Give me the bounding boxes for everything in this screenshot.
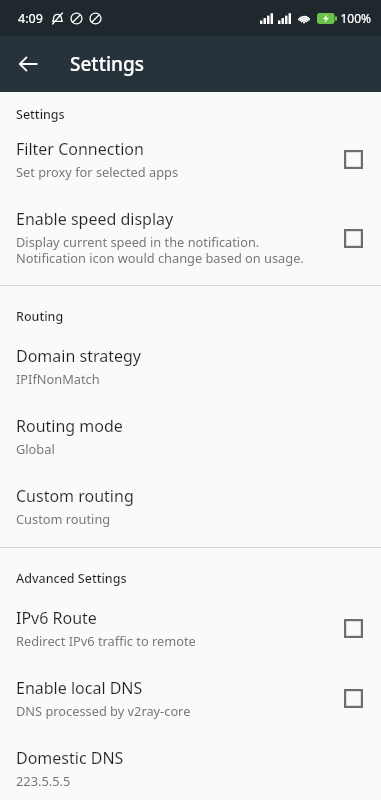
button[interactable]: Domestic DNS — [0, 733, 381, 800]
staticText: Routing — [16, 308, 64, 325]
staticText: Set proxy for selected apps — [16, 163, 179, 180]
button[interactable]: Toggle Filter Connection — [341, 147, 365, 171]
button[interactable]: Toggle Enable local DNS — [341, 686, 365, 710]
button[interactable]: Toggle IPv6 Route — [341, 616, 365, 640]
staticText: Global — [16, 440, 55, 457]
button[interactable]: Custom routing — [0, 471, 381, 547]
staticText: DNS processed by v2ray-core — [16, 702, 191, 719]
staticText: Domestic DNS — [16, 747, 124, 769]
staticText: Enable local DNS — [16, 677, 143, 699]
staticText: Settings — [16, 106, 65, 123]
button[interactable]: Filter Connection — [0, 123, 381, 194]
button[interactable]: Routing mode — [0, 401, 381, 471]
staticText: Filter Connection — [16, 138, 144, 160]
button[interactable]: Enable speed display — [0, 194, 381, 285]
staticText: Custom routing — [16, 485, 134, 507]
button[interactable]: Enable local DNS — [0, 663, 381, 733]
staticText: 223.5.5.5 — [16, 772, 71, 786]
staticText: IPv6 Route — [16, 607, 97, 629]
staticText: Domain strategy — [16, 345, 141, 367]
button[interactable]: Toggle Enable speed display — [341, 226, 365, 250]
staticText: Enable speed display — [16, 208, 174, 230]
staticText: Display current speed in the notificatio… — [16, 233, 304, 267]
staticText: Routing mode — [16, 415, 123, 437]
button[interactable]: IPv6 Route — [0, 587, 381, 663]
staticText: Advanced Settings — [16, 570, 127, 587]
staticText: Redirect IPv6 traffic to remote — [16, 632, 196, 649]
staticText: Custom routing — [16, 510, 111, 527]
staticText: 4:09 — [18, 10, 43, 27]
staticText: Settings — [70, 51, 144, 77]
staticText: IPIfNonMatch — [16, 370, 100, 387]
button[interactable]: Back — [8, 44, 48, 84]
button[interactable]: Domain strategy — [0, 325, 381, 401]
staticText: 100% — [340, 10, 371, 26]
